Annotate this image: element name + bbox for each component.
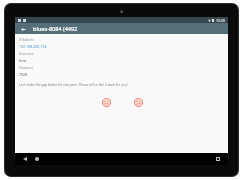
staticText: Password <box>19 66 33 70</box>
button[interactable]: Back <box>21 155 29 163</box>
button[interactable]: Rate positive <box>99 95 113 109</box>
button[interactable]: Home <box>33 155 41 163</box>
staticText: IP Address <box>19 38 34 42</box>
staticText: Username <box>19 52 34 56</box>
staticText: blues-8084 (4492 <box>33 25 78 32</box>
staticText: 7928 <box>19 72 28 77</box>
button[interactable]: Rate negative <box>131 95 145 109</box>
button[interactable]: Navigate up <box>19 25 27 33</box>
button[interactable]: Recent apps <box>214 155 222 163</box>
staticText: Let's make the gap better for everyone. … <box>19 83 128 87</box>
staticText: 192.168.200.154 <box>19 44 47 49</box>
staticText: 12:30 <box>216 18 225 23</box>
staticText: host <box>19 58 27 63</box>
